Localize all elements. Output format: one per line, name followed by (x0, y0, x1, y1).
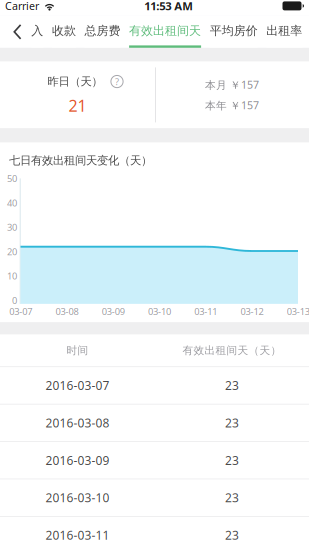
staticText: 2016-03-08 (45, 415, 109, 431)
staticText: 2016-03-07 (45, 377, 109, 394)
staticText: 03-07 (9, 305, 32, 318)
staticText: 23 (225, 415, 239, 431)
staticText: 入 (31, 23, 43, 38)
button[interactable]: 2016-03-09 (0, 441, 309, 479)
staticText: 有效出租间天（天） (182, 344, 281, 357)
staticText: 2016-03-09 (45, 452, 109, 468)
staticText: 出租率 (266, 23, 302, 38)
button[interactable]: 2016-03-07 (0, 366, 309, 404)
button[interactable]: 平均房价 (205, 16, 262, 48)
staticText: 03-09 (102, 305, 125, 318)
staticText: 10 (7, 270, 17, 282)
staticText: 03-13 (287, 305, 309, 318)
button[interactable]: 收款 (48, 16, 80, 48)
staticText: 03-11 (194, 305, 217, 318)
staticText: 总房费 (84, 23, 120, 38)
staticText: 昨日（天） (47, 74, 102, 89)
button[interactable]: 2016-03-08 (0, 404, 309, 441)
staticText: 03-10 (148, 305, 171, 318)
staticText: 03-08 (55, 305, 78, 318)
staticText: 30 (7, 221, 17, 233)
staticText: 23 (225, 489, 239, 506)
staticText: 23 (225, 527, 239, 543)
button[interactable]: 总房费 (80, 16, 125, 48)
staticText: 21 (68, 95, 86, 116)
staticText: 时间 (66, 344, 88, 357)
staticText: 03-12 (241, 305, 264, 318)
staticText: 50 (7, 172, 17, 185)
button[interactable]: Back (0, 16, 27, 48)
staticText: 40 (7, 196, 17, 209)
staticText: 本月 ￥157 (205, 77, 259, 92)
staticText: 23 (225, 452, 239, 468)
staticText: 23 (225, 377, 239, 394)
staticText: 2016-03-10 (45, 489, 109, 506)
staticText: 2016-03-11 (45, 527, 109, 543)
button[interactable]: 入 (27, 16, 48, 48)
button[interactable]: 2016-03-11 (0, 516, 309, 550)
staticText: 有效出租间天 (129, 23, 201, 38)
staticText: 0 (12, 294, 17, 307)
staticText: 平均房价 (210, 23, 258, 38)
staticText: ? (115, 75, 119, 88)
staticText: Carrier (5, 0, 39, 13)
staticText: 本年 ￥157 (205, 98, 259, 112)
staticText: 收款 (52, 23, 76, 38)
button[interactable]: 出租率 (262, 16, 307, 48)
staticText: 七日有效出租间天变化（天） (9, 153, 152, 168)
button[interactable]: 有效出租间天 (125, 16, 205, 48)
staticText: 11:53 AM (144, 0, 193, 14)
button[interactable]: 2016-03-10 (0, 479, 309, 516)
staticText: 20 (7, 245, 17, 258)
